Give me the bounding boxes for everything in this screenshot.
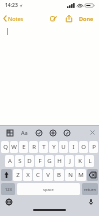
staticText: A [8,157,12,165]
button[interactable]: S [15,155,24,167]
button[interactable]: K [75,155,84,167]
staticText: return [84,187,96,192]
button[interactable]: L [85,155,94,167]
button[interactable]: W [10,141,18,153]
button[interactable]: Share [63,12,75,25]
button[interactable]: D [25,155,34,167]
staticText: S [18,157,22,165]
staticText: M [78,171,84,179]
staticText: P [92,143,96,151]
button[interactable]: E [19,141,28,153]
button[interactable]: Shift [1,169,12,181]
button[interactable]: H [55,155,64,167]
staticText: Done [79,15,94,22]
button[interactable]: X [23,169,32,181]
staticText: C [36,171,40,179]
staticText: H [57,157,62,165]
staticText: J [69,157,71,165]
staticText: Notes [8,15,24,22]
staticText: Z [16,171,20,179]
button[interactable]: T [39,141,48,153]
staticText: D [27,157,32,165]
button[interactable]: Table [6,129,14,137]
staticText: K [78,157,82,165]
staticText: space [43,187,54,192]
button[interactable]: space [17,183,80,195]
staticText: G [47,157,52,165]
staticText: 123 [5,187,12,192]
button[interactable]: Attach [49,129,57,137]
button[interactable]: return [82,183,98,195]
button[interactable]: O [79,141,88,153]
button[interactable]: Hide keyboard [86,126,99,139]
staticText: V [46,171,50,179]
button[interactable]: Switch language [0,196,16,208]
button[interactable]: A [5,155,14,167]
button[interactable]: Z [13,169,22,181]
button[interactable]: Compose [47,12,60,25]
button[interactable]: J [65,155,74,167]
button[interactable]: P [89,141,98,153]
staticText: Y [52,143,56,151]
staticText: E [22,143,26,151]
button[interactable]: Dictate [85,196,99,208]
button[interactable]: Done [77,13,96,24]
button[interactable]: Backspace [87,169,98,181]
button[interactable]: C [33,169,42,181]
button[interactable]: R [29,141,38,153]
button[interactable]: B [54,169,64,181]
button[interactable]: U [59,141,68,153]
button[interactable]: M [76,169,86,181]
button[interactable]: Notes [0,13,28,24]
button[interactable]: F [35,155,44,167]
staticText: R [32,143,36,151]
staticText: Q [3,143,8,151]
button[interactable]: Checklist [35,129,43,137]
staticText: U [61,143,66,151]
staticText: L [88,157,92,165]
staticText: O [81,143,86,151]
button[interactable]: N [65,169,75,181]
staticText: B [57,171,61,179]
staticText: I [72,143,75,151]
button[interactable]: Markup [63,129,71,137]
staticText: T [42,143,46,151]
staticText: X [26,171,30,179]
button[interactable]: G [45,155,54,167]
button[interactable]: I [69,141,78,153]
button[interactable]: V [43,169,53,181]
staticText: W [11,143,17,151]
button[interactable]: Q [1,141,9,153]
staticText: N [68,171,73,179]
staticText: F [38,157,42,165]
staticText: 14:23 [5,2,18,9]
button[interactable]: 123 [1,183,15,195]
button[interactable]: Text format [20,128,29,137]
button[interactable]: Y [49,141,58,153]
staticText: Aa [21,129,28,136]
